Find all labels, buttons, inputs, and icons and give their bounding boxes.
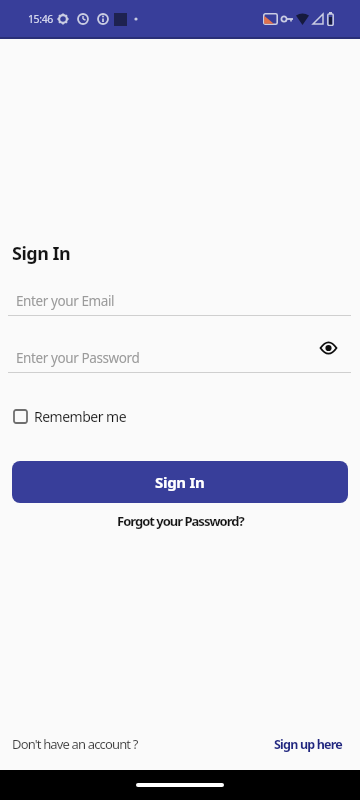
button[interactable] [314,336,342,360]
staticText: 15:46 [28,12,53,26]
staticText: Remember me [34,407,127,426]
staticText: Sign up here [274,736,342,753]
staticText: Enter your Email [16,292,115,310]
staticText: Sign In [155,472,205,492]
button[interactable]: Enter your Email [8,286,351,316]
staticText: Sign In [12,241,71,266]
staticText: Enter your Password [16,349,140,367]
button[interactable]: Forgot your Password? [0,509,360,533]
button[interactable]: Remember me [13,402,153,430]
staticText: Don't have an account ? [12,735,138,753]
staticText: Forgot your Password? [117,512,244,530]
button[interactable]: Sign up here [274,736,342,753]
button[interactable]: Sign In [12,461,348,503]
button[interactable]: Enter your Password [8,342,351,373]
